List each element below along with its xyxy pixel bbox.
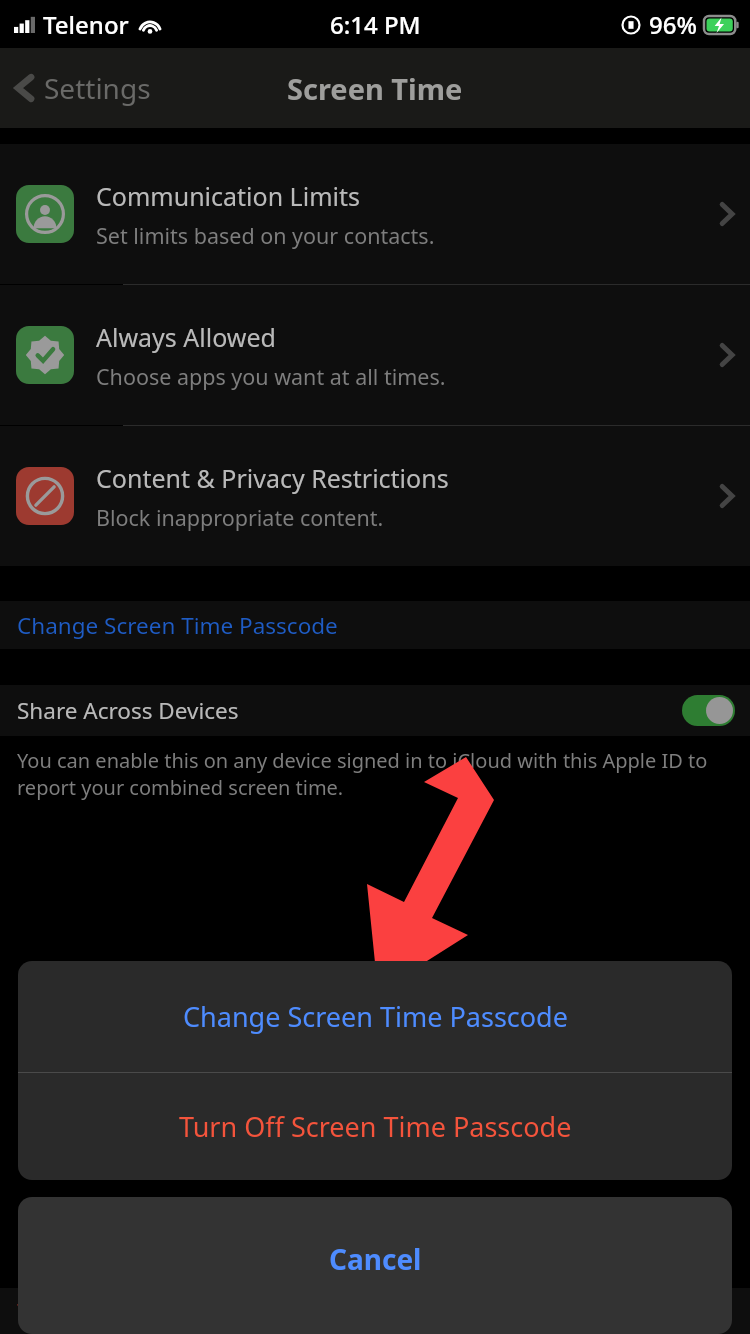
staticText: Change Screen Time Passcode xyxy=(17,610,338,641)
staticText: 96% xyxy=(649,8,697,41)
staticText: Turn Off Screen Time Passcode xyxy=(179,1108,572,1145)
button[interactable]: Share Across Devices toggle xyxy=(682,695,735,726)
staticText: Set limits based on your contacts. xyxy=(96,221,435,250)
button[interactable]: Share Across Devices xyxy=(0,685,750,736)
staticText: Telenor xyxy=(43,8,129,41)
staticText: Always Allowed xyxy=(96,320,276,354)
staticText: You can enable this on any device signed… xyxy=(17,747,733,801)
button[interactable]: Cancel xyxy=(18,1197,732,1334)
staticText: Share Across Devices xyxy=(17,695,239,726)
button[interactable]: Back to Settings xyxy=(0,63,161,113)
staticText: Content & Privacy Restrictions xyxy=(96,461,449,495)
staticText: Cancel xyxy=(329,1240,422,1278)
button[interactable]: Change Screen Time Passcode xyxy=(0,601,750,649)
button[interactable]: Turn Off Screen Time xyxy=(0,1288,750,1334)
staticText: Choose apps you want at all times. xyxy=(96,362,446,391)
staticText: 6:14 PM xyxy=(330,8,421,41)
button[interactable]: Always Allowed xyxy=(0,285,750,425)
button[interactable]: Communication Limits xyxy=(0,144,750,284)
staticText: Change Screen Time Passcode xyxy=(183,998,568,1035)
button[interactable]: Change Screen Time Passcode xyxy=(18,961,732,1072)
button[interactable]: Content & Privacy Restrictions xyxy=(0,426,750,566)
button[interactable]: Turn Off Screen Time Passcode xyxy=(18,1073,732,1180)
staticText: Communication Limits xyxy=(96,179,360,213)
staticText: Screen Time xyxy=(287,69,463,108)
staticText: Block inappropriate content. xyxy=(96,503,384,532)
staticText: Settings xyxy=(44,69,151,107)
